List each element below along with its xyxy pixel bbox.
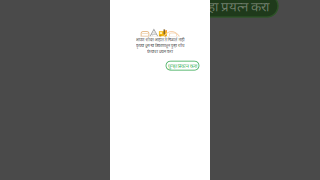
- button[interactable]: पुन्हा प्रयत्न करा: [166, 61, 199, 70]
- staticText: घेण्याचा प्रयत्न करा: [147, 49, 173, 54]
- staticText: पुन्हा प्रयत्न करा: [168, 62, 197, 69]
- staticText: आपण शोधत आहात ते मिळाले नाही: [135, 37, 184, 42]
- staticText: पुन्हा प्रयत्न करा: [196, 0, 269, 15]
- staticText: कृपया दुसऱ्या ठिकाणाहून पुन्हा शोध: [136, 43, 184, 48]
- button[interactable]: Try again: [187, 0, 278, 17]
